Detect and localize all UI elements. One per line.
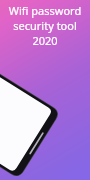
staticText: Wifi password	[2, 3, 88, 18]
staticText: security tool	[2, 18, 88, 33]
staticText: 2020	[2, 33, 88, 48]
button[interactable]: Wifi password	[2, 3, 88, 48]
button[interactable]: Phone app preview	[0, 0, 90, 180]
